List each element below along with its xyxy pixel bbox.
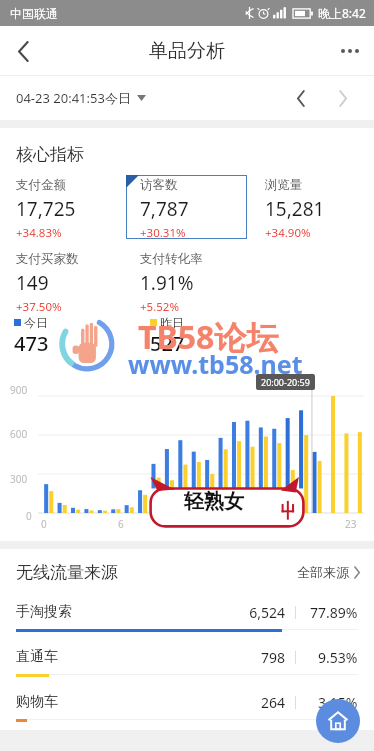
- staticText: 17,725: [16, 196, 76, 222]
- staticText: 直通车: [16, 648, 58, 666]
- staticText: 300: [10, 472, 28, 486]
- staticText: 0: [26, 509, 32, 523]
- staticText: 昨日: [160, 315, 184, 330]
- staticText: 6: [118, 517, 124, 531]
- staticText: 900: [10, 383, 28, 397]
- staticText: 6,524: [249, 603, 285, 622]
- button[interactable]: Previous day: [284, 81, 318, 115]
- button[interactable]: 访客数: [126, 175, 247, 239]
- staticText: 23: [345, 517, 357, 531]
- staticText: +37.50%: [16, 299, 62, 311]
- staticText: +30.31%: [140, 225, 186, 239]
- staticText: 264: [260, 693, 285, 712]
- staticText: TB58论坛: [138, 315, 279, 359]
- staticText: 手淘搜索: [16, 603, 72, 621]
- button[interactable]: 全部来源: [297, 564, 360, 580]
- staticText: 中国联通: [10, 6, 58, 21]
- button[interactable]: 直通车: [0, 640, 374, 685]
- staticText: 访客数: [140, 177, 178, 193]
- staticText: 9.53%: [318, 648, 358, 667]
- button[interactable]: 购物车: [0, 685, 374, 730]
- staticText: 798: [260, 648, 285, 667]
- staticText: 无线流量来源: [16, 562, 118, 583]
- staticText: 3.15%: [318, 693, 358, 712]
- staticText: 支付金额: [16, 177, 66, 193]
- staticText: 527: [150, 330, 185, 357]
- staticText: 149: [16, 270, 49, 296]
- staticText: 购物车: [16, 693, 58, 711]
- staticText: 15,281: [265, 196, 325, 222]
- button[interactable]: 手淘搜索: [0, 595, 374, 640]
- button[interactable]: 支付转化率: [126, 249, 247, 311]
- staticText: 核心指标: [16, 144, 84, 165]
- button[interactable]: 支付金额: [2, 175, 122, 239]
- staticText: 77.89%: [310, 603, 358, 622]
- staticText: 04-23 20:41:53今日: [16, 89, 131, 107]
- staticText: 支付转化率: [140, 251, 203, 267]
- staticText: 单品分析: [149, 39, 225, 63]
- staticText: +34.90%: [265, 225, 311, 239]
- staticText: 20:00-20:59: [261, 376, 310, 388]
- staticText: www.tb58.net: [128, 347, 303, 381]
- staticText: 浏览量: [265, 177, 303, 193]
- button[interactable]: Next day: [326, 81, 360, 115]
- staticText: 全部来源: [297, 564, 349, 580]
- button[interactable]: Back: [0, 26, 46, 76]
- button[interactable]: 支付买家数: [2, 249, 122, 311]
- button[interactable]: More options: [326, 26, 374, 76]
- staticText: +5.52%: [140, 299, 179, 311]
- button[interactable]: Home: [316, 699, 360, 743]
- staticText: 1.91%: [140, 270, 194, 296]
- button[interactable]: 04-23 20:41:53今日: [16, 89, 146, 107]
- button[interactable]: 浏览量: [251, 175, 372, 239]
- staticText: +34.83%: [16, 225, 62, 239]
- staticText: 今日: [24, 315, 48, 330]
- staticText: 473: [14, 330, 49, 357]
- staticText: 7,787: [140, 196, 189, 222]
- staticText: 600: [10, 427, 28, 441]
- staticText: 晚上8:42: [318, 5, 366, 21]
- staticText: 轻熟女: [184, 489, 244, 514]
- staticText: 0: [41, 517, 47, 531]
- staticText: 支付买家数: [16, 251, 79, 267]
